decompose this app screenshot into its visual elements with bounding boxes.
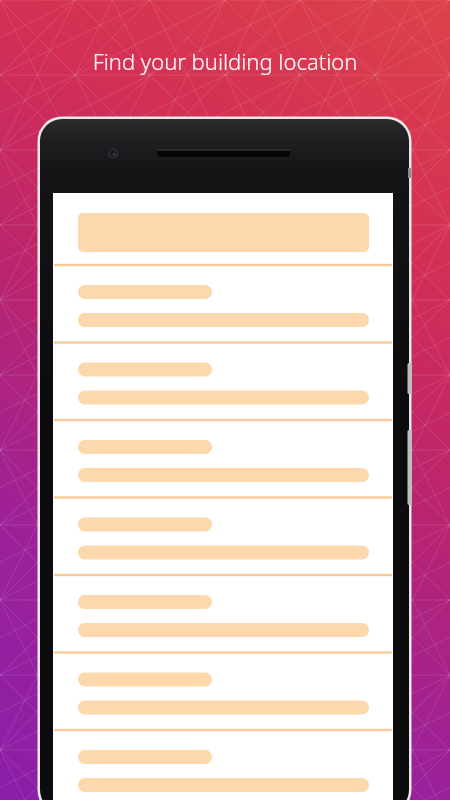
button[interactable]: Search for a building (53, 193, 393, 265)
button[interactable]: Building list item 4 (53, 498, 393, 575)
button[interactable]: Building list item 1 (53, 265, 393, 342)
button[interactable]: Building list item 6 (53, 653, 393, 730)
staticText: Find your building location (16, 46, 434, 76)
button[interactable]: Building list item 7 (53, 730, 393, 800)
button[interactable]: Building list item 5 (53, 575, 393, 652)
button[interactable]: Building list item 3 (53, 420, 393, 497)
button[interactable]: Building list item 2 (53, 343, 393, 420)
